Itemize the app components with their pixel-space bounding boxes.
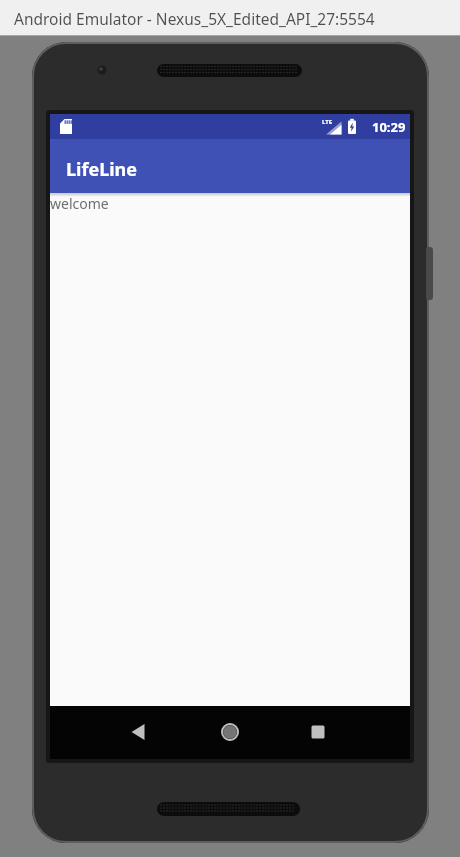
staticText: 10:29 xyxy=(372,118,406,136)
staticText: LifeLine xyxy=(66,157,138,182)
button[interactable] xyxy=(200,706,260,759)
button[interactable] xyxy=(108,706,168,759)
staticText: Android Emulator - Nexus_5X_Edited_API_2… xyxy=(14,8,375,29)
button[interactable] xyxy=(288,706,348,759)
staticText: welcome xyxy=(50,194,109,213)
staticText: LTE xyxy=(322,118,333,126)
